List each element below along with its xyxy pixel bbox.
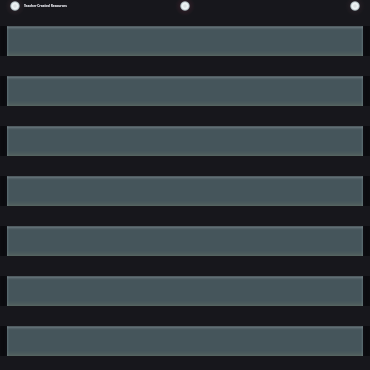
button[interactable]: Resource item 1 xyxy=(0,26,370,56)
button[interactable]: Navigation menu xyxy=(5,0,25,16)
button[interactable]: Resource item 7 xyxy=(0,326,370,356)
button[interactable]: Resource item 3 xyxy=(0,126,370,156)
button[interactable]: Resource item 5 xyxy=(0,226,370,256)
button[interactable]: Resource item 4 xyxy=(0,176,370,206)
button[interactable]: Search xyxy=(175,0,195,16)
button[interactable]: Resource item 2 xyxy=(0,76,370,106)
button[interactable]: Resource item 6 xyxy=(0,276,370,306)
staticText: Teacher Created Resources xyxy=(24,4,67,8)
button[interactable]: More options xyxy=(345,0,365,16)
